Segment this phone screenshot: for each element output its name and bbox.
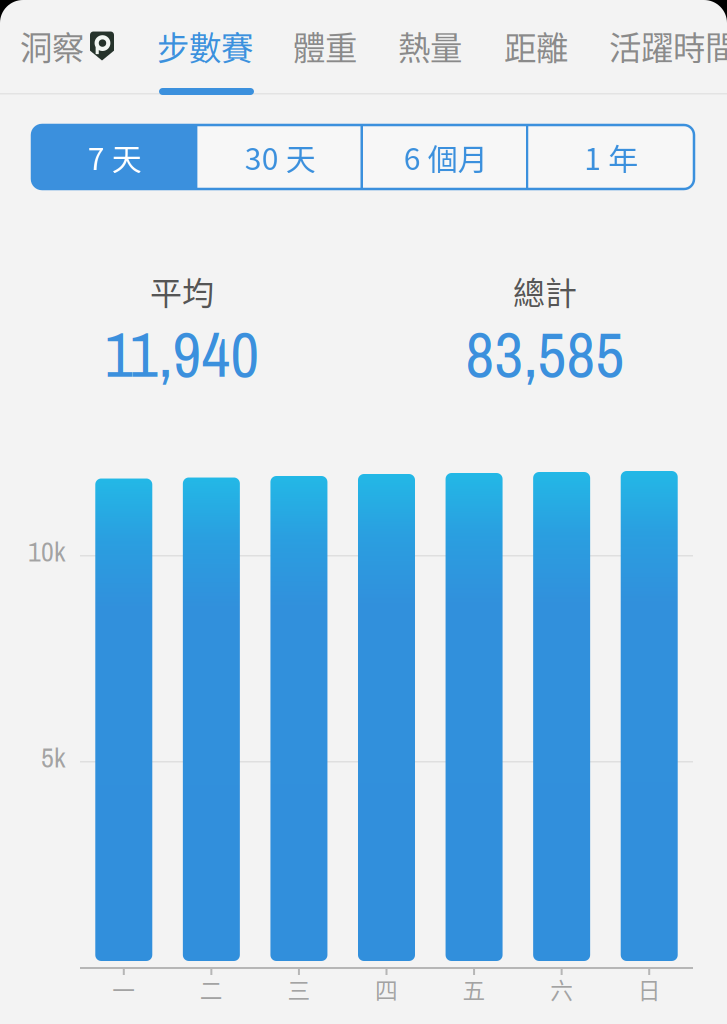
button[interactable]: 距離 (504, 21, 568, 71)
staticText: 熱量 (398, 22, 462, 69)
staticText: 二 (200, 973, 223, 1005)
staticText: 6 個月 (404, 135, 488, 179)
staticText: 步數賽 (157, 22, 253, 69)
staticText: 總計 (513, 268, 577, 314)
staticText: 五 (463, 973, 486, 1005)
button[interactable]: 1 年 (528, 125, 694, 189)
staticText: 一 (112, 973, 135, 1005)
button[interactable]: 洞察 (20, 21, 114, 71)
staticText: 30 天 (245, 135, 316, 179)
staticText: 11,940 (104, 312, 259, 396)
staticText: 三 (287, 973, 310, 1005)
staticText: 7 天 (88, 135, 142, 179)
staticText: 距離 (504, 22, 568, 69)
button[interactable]: 活躍時間 (609, 21, 727, 71)
staticText: 四 (375, 973, 398, 1005)
staticText: 5k (41, 739, 65, 776)
staticText: 日 (638, 973, 661, 1005)
button[interactable]: 6 個月 (363, 125, 528, 189)
button[interactable]: 體重 (293, 21, 357, 71)
button[interactable]: 熱量 (398, 21, 462, 71)
staticText: 平均 (150, 268, 214, 314)
staticText: 10k (28, 533, 65, 570)
staticText: 83,585 (465, 312, 624, 396)
staticText: 洞察 (20, 22, 84, 69)
staticText: 六 (550, 973, 573, 1005)
button[interactable]: 步數賽 (157, 21, 253, 71)
staticText: 活躍時間 (609, 22, 727, 69)
button[interactable]: 30 天 (197, 125, 363, 189)
button[interactable]: 7 天 (32, 125, 197, 189)
staticText: 1 年 (584, 135, 638, 179)
staticText: 體重 (293, 22, 357, 69)
